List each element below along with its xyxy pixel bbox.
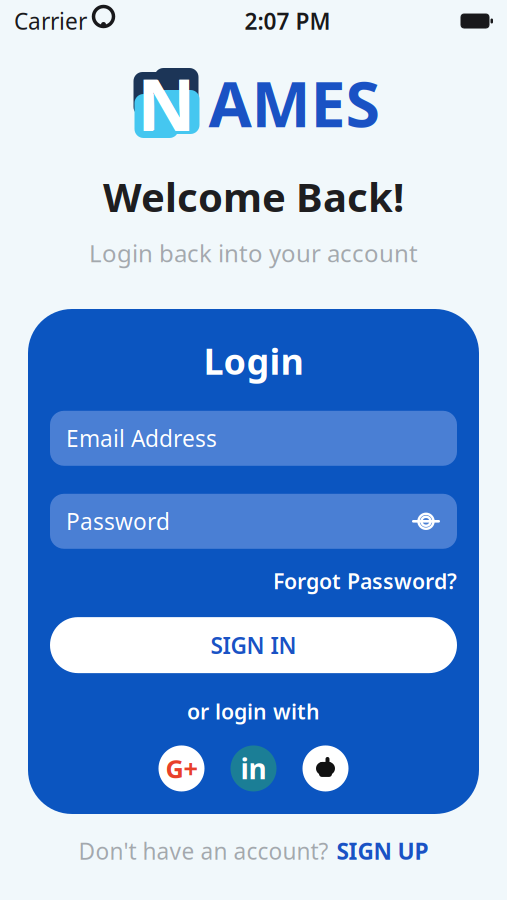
staticText: SIGN IN — [210, 630, 296, 660]
button[interactable]: Sign in with Apple — [302, 745, 348, 791]
staticText: Carrier — [14, 6, 87, 36]
staticText: AMES — [208, 61, 380, 145]
staticText: Password — [66, 506, 170, 536]
button[interactable]: Forgot Password? — [273, 567, 457, 595]
staticText: Forgot Password? — [273, 567, 457, 595]
staticText: Login back into your account — [89, 237, 418, 269]
staticText: Welcome Back! — [103, 170, 404, 223]
staticText: N — [137, 55, 196, 151]
staticText: in — [240, 750, 266, 787]
button[interactable]: Email Address — [50, 411, 457, 466]
staticText: or login with — [187, 697, 320, 725]
staticText: Email Address — [66, 423, 217, 453]
button[interactable]: Password — [50, 494, 457, 549]
staticText: Don't have an account? — [78, 836, 328, 866]
staticText: Login — [203, 337, 303, 385]
button[interactable]: SIGN IN — [50, 617, 457, 673]
staticText: N — [138, 57, 194, 149]
staticText: G+ — [165, 752, 197, 785]
button[interactable]: SIGN UP — [336, 836, 428, 866]
staticText: SIGN UP — [336, 836, 428, 866]
staticText: 2:07 PM — [244, 6, 330, 36]
button[interactable]: Sign in with LinkedIn — [230, 745, 276, 791]
button[interactable]: Sign in with Google — [158, 745, 204, 791]
